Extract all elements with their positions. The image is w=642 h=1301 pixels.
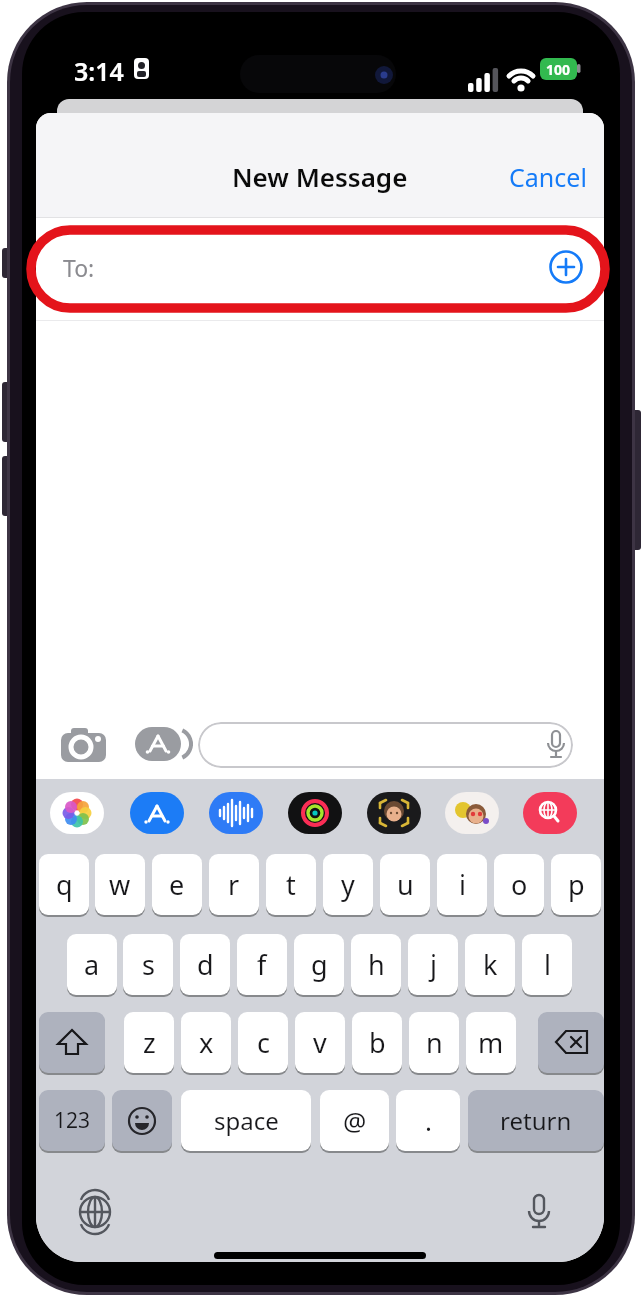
button[interactable]: [58, 726, 108, 766]
staticText: g: [311, 946, 328, 983]
staticText: s: [142, 946, 155, 983]
button[interactable]: k: [465, 934, 515, 995]
button[interactable]: [112, 1090, 172, 1151]
button[interactable]: Cancel: [509, 160, 587, 194]
button[interactable]: [130, 792, 184, 834]
button[interactable]: return: [468, 1090, 604, 1151]
staticText: y: [341, 866, 355, 903]
button[interactable]: v: [295, 1012, 345, 1073]
button[interactable]: d: [180, 934, 230, 995]
staticText: Cancel: [509, 160, 587, 194]
button[interactable]: w: [95, 854, 145, 915]
button[interactable]: s: [123, 934, 173, 995]
button[interactable]: [50, 792, 104, 834]
staticText: To:: [63, 252, 95, 283]
staticText: o: [511, 866, 528, 903]
staticText: n: [426, 1024, 443, 1061]
button[interactable]: h: [351, 934, 401, 995]
staticText: .: [425, 1103, 432, 1138]
staticText: c: [257, 1024, 270, 1061]
button[interactable]: 123: [39, 1090, 105, 1151]
button[interactable]: n: [409, 1012, 459, 1073]
staticText: h: [368, 946, 385, 983]
staticText: k: [483, 946, 498, 983]
staticText: f: [257, 946, 267, 983]
staticText: x: [199, 1024, 214, 1061]
staticText: z: [143, 1024, 156, 1061]
button[interactable]: o: [494, 854, 544, 915]
staticText: 100: [546, 60, 571, 79]
button[interactable]: [39, 1012, 105, 1073]
button[interactable]: x: [181, 1012, 231, 1073]
button[interactable]: [77, 1194, 113, 1230]
staticText: e: [169, 866, 185, 903]
button[interactable]: z: [124, 1012, 174, 1073]
button[interactable]: l: [522, 934, 572, 995]
staticText: d: [197, 946, 214, 983]
button[interactable]: m: [466, 1012, 516, 1073]
button[interactable]: e: [152, 854, 202, 915]
staticText: space: [214, 1104, 279, 1137]
button[interactable]: [524, 1193, 554, 1231]
button[interactable]: @: [320, 1090, 389, 1151]
button[interactable]: [548, 249, 584, 285]
staticText: w: [109, 866, 131, 903]
button[interactable]: q: [39, 854, 89, 915]
button[interactable]: [445, 792, 499, 834]
button[interactable]: g: [294, 934, 344, 995]
button[interactable]: t: [266, 854, 316, 915]
button[interactable]: c: [238, 1012, 288, 1073]
staticText: a: [84, 946, 100, 983]
button[interactable]: [538, 1012, 604, 1073]
button[interactable]: b: [352, 1012, 402, 1073]
button[interactable]: p: [551, 854, 601, 915]
staticText: b: [369, 1024, 386, 1061]
button[interactable]: u: [380, 854, 430, 915]
staticText: j: [430, 946, 437, 983]
button[interactable]: [288, 792, 342, 834]
staticText: p: [568, 866, 585, 903]
staticText: i: [459, 866, 466, 903]
button[interactable]: i: [437, 854, 487, 915]
staticText: r: [228, 866, 240, 903]
staticText: m: [478, 1024, 504, 1061]
staticText: t: [286, 866, 296, 903]
button[interactable]: j: [408, 934, 458, 995]
button[interactable]: a: [67, 934, 117, 995]
button[interactable]: r: [209, 854, 259, 915]
button[interactable]: .: [396, 1090, 460, 1151]
button[interactable]: y: [323, 854, 373, 915]
button[interactable]: f: [237, 934, 287, 995]
staticText: q: [56, 866, 73, 903]
button[interactable]: [135, 727, 197, 765]
staticText: return: [500, 1104, 572, 1137]
staticText: 3:14: [74, 54, 124, 88]
staticText: @: [343, 1103, 367, 1138]
staticText: u: [397, 866, 414, 903]
staticText: New Message: [232, 159, 408, 194]
button[interactable]: To:: [36, 219, 604, 320]
button[interactable]: [209, 792, 263, 834]
button[interactable]: [198, 722, 573, 768]
button[interactable]: [367, 792, 421, 834]
staticText: l: [544, 946, 551, 983]
button[interactable]: [523, 792, 577, 834]
staticText: v: [313, 1024, 327, 1061]
button[interactable]: space: [181, 1090, 311, 1151]
staticText: 123: [54, 1106, 91, 1135]
